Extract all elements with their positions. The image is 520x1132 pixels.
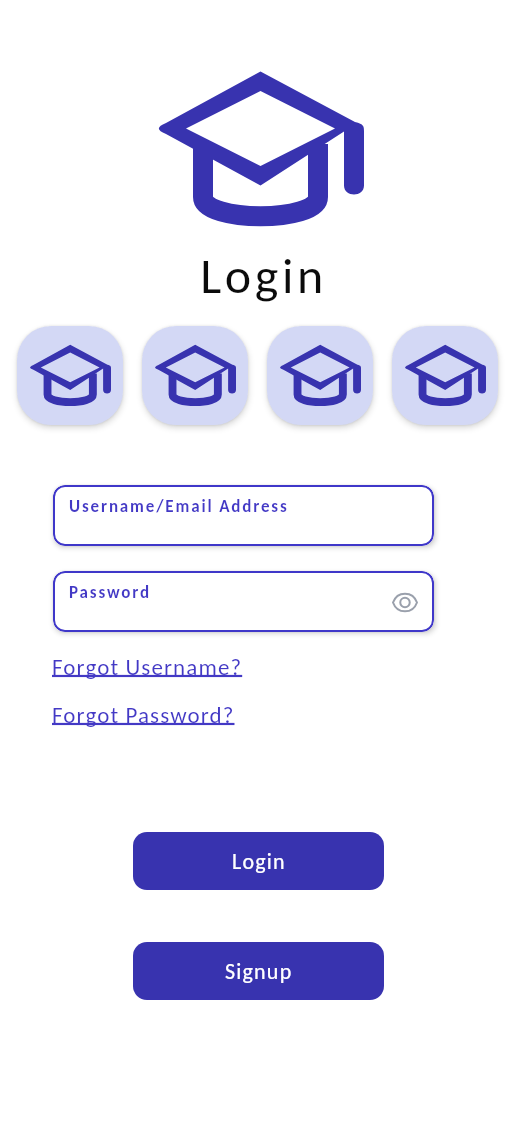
button[interactable]: Course — [392, 326, 498, 425]
staticText: Login — [200, 245, 327, 306]
button[interactable]: Show password — [383, 582, 427, 622]
button[interactable]: Course — [267, 326, 373, 425]
staticText: Signup — [225, 958, 293, 985]
button[interactable]: Login — [133, 832, 384, 890]
button[interactable]: Forgot Password? — [52, 701, 235, 729]
staticText: Password — [69, 582, 152, 603]
button[interactable]: Username/Email Address — [53, 485, 434, 546]
button[interactable]: Signup — [133, 942, 384, 1000]
button[interactable]: Course — [17, 326, 123, 425]
staticText: Username/Email Address — [69, 496, 289, 517]
button[interactable]: Forgot Username? — [52, 653, 243, 681]
staticText: Login — [232, 848, 286, 875]
button[interactable]: Password — [53, 571, 434, 632]
button[interactable]: Course — [142, 326, 248, 425]
